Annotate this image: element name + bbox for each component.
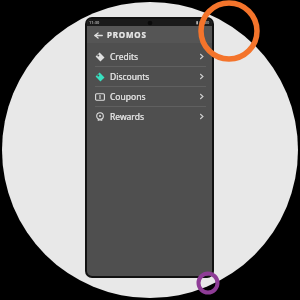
- staticText: Coupons: [110, 91, 198, 103]
- staticText: PROMOS: [107, 29, 147, 40]
- staticText: 11:30: [89, 20, 100, 25]
- button[interactable]: Credits: [87, 47, 212, 66]
- staticText: Discounts: [110, 71, 198, 83]
- staticText: Rewards: [110, 111, 198, 123]
- button[interactable]: Rewards: [87, 107, 212, 126]
- staticText: Credits: [110, 51, 198, 63]
- staticText: ▮ ▮ 100: [196, 20, 210, 25]
- button[interactable]: Discounts: [87, 67, 212, 86]
- button[interactable]: Back: [92, 29, 104, 41]
- button[interactable]: Coupons: [87, 87, 212, 106]
